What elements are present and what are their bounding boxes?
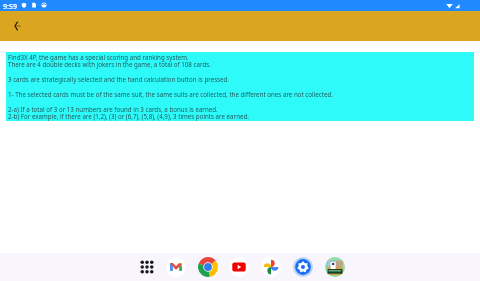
- staticText: 2-b) For example, if there are (1,2), (3…: [8, 112, 249, 120]
- button[interactable]: All apps: [137, 257, 157, 277]
- button[interactable]: Chrome: [198, 257, 218, 277]
- button[interactable]: Google Photos: [261, 257, 281, 277]
- staticText: There are 4 double decks with jokers in …: [8, 60, 211, 68]
- button[interactable]: Back: [8, 17, 26, 35]
- button[interactable]: Find3X: [325, 257, 345, 277]
- button[interactable]: Settings: [293, 257, 313, 277]
- button[interactable]: YouTube: [229, 257, 249, 277]
- button[interactable]: Gmail: [166, 257, 186, 277]
- staticText: 2-a) If a total of 3 or 13 numbers are f…: [8, 105, 218, 113]
- staticText: 9:59: [3, 2, 17, 12]
- staticText: Find3X 4P, the game has a special scorin…: [8, 53, 189, 61]
- staticText: 1- The selected cards must be of the sam…: [8, 90, 333, 98]
- staticText: 3 cards are strategically selected and t…: [8, 75, 230, 83]
